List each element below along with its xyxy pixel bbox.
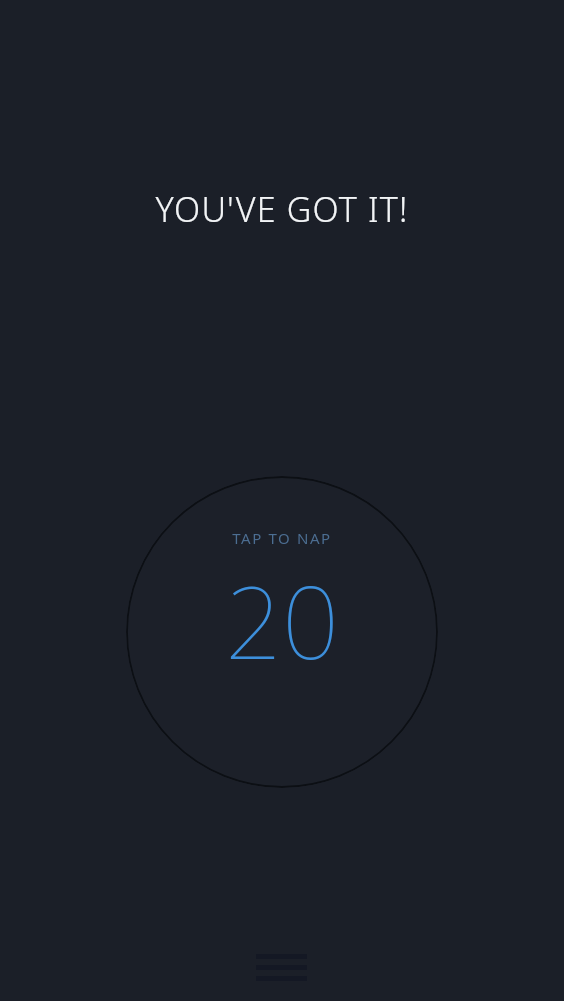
button[interactable]: TAP TO NAP (126, 476, 438, 788)
staticText: TAP TO NAP (232, 528, 332, 548)
staticText: 20 (225, 552, 339, 688)
staticText: YOU'VE GOT IT! (155, 186, 409, 232)
